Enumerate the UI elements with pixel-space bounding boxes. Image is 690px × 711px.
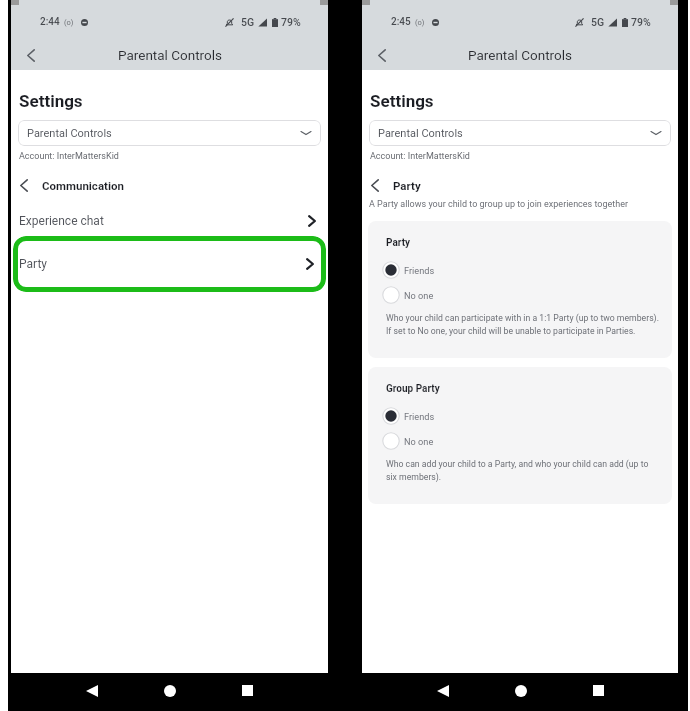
button[interactable]: Back [17,41,45,69]
button[interactable]: Parental Controls [18,120,321,146]
staticText: 5G [591,16,605,28]
staticText: 5G [241,16,255,28]
staticText: No one [404,436,434,447]
staticText: A Party allows your child to group up to… [369,199,629,210]
staticText: Communication [42,179,124,192]
button[interactable]: Recent apps [583,675,614,706]
button[interactable]: No one [368,432,672,450]
staticText: Friends [404,411,435,422]
staticText: Party [393,179,421,192]
button[interactable]: Friends [368,261,672,279]
staticText: Parental Controls [27,127,112,140]
button[interactable]: Friends [368,407,672,425]
staticText: Experience chat [19,214,104,228]
staticText: 79% [631,16,651,28]
button[interactable]: Home [154,675,185,706]
button[interactable]: Party [13,236,326,292]
staticText: 79% [281,16,301,28]
button[interactable]: Back [76,675,107,706]
button[interactable]: Experience chat [11,209,328,233]
button[interactable]: Recent apps [232,675,263,706]
staticText: Account: InterMattersKid [19,151,119,162]
staticText: 2:45 [391,16,411,28]
button[interactable]: Communication [11,173,328,197]
staticText: Settings [19,91,83,111]
staticText: 2:44 [40,16,60,28]
button[interactable]: No one [368,286,672,304]
staticText: Parental Controls [468,47,572,63]
staticText: Party [386,237,411,249]
button[interactable]: Home [505,675,536,706]
staticText: Friends [404,265,435,276]
staticText: Account: InterMattersKid [370,151,470,162]
staticText: No one [404,290,434,301]
staticText: Group Party [386,383,440,395]
staticText: Parental Controls [118,47,222,63]
staticText: Party [19,257,47,271]
button[interactable]: Back [427,675,458,706]
staticText: (o) [415,18,425,27]
staticText: (o) [64,18,74,27]
staticText: Who your child can participate with in a… [386,313,660,336]
button[interactable]: Back [368,41,396,69]
staticText: Who can add your child to a Party, and w… [386,459,660,482]
staticText: Parental Controls [378,127,463,140]
button[interactable]: Parental Controls [369,120,671,146]
button[interactable]: Party [362,173,678,197]
staticText: Settings [370,91,434,111]
